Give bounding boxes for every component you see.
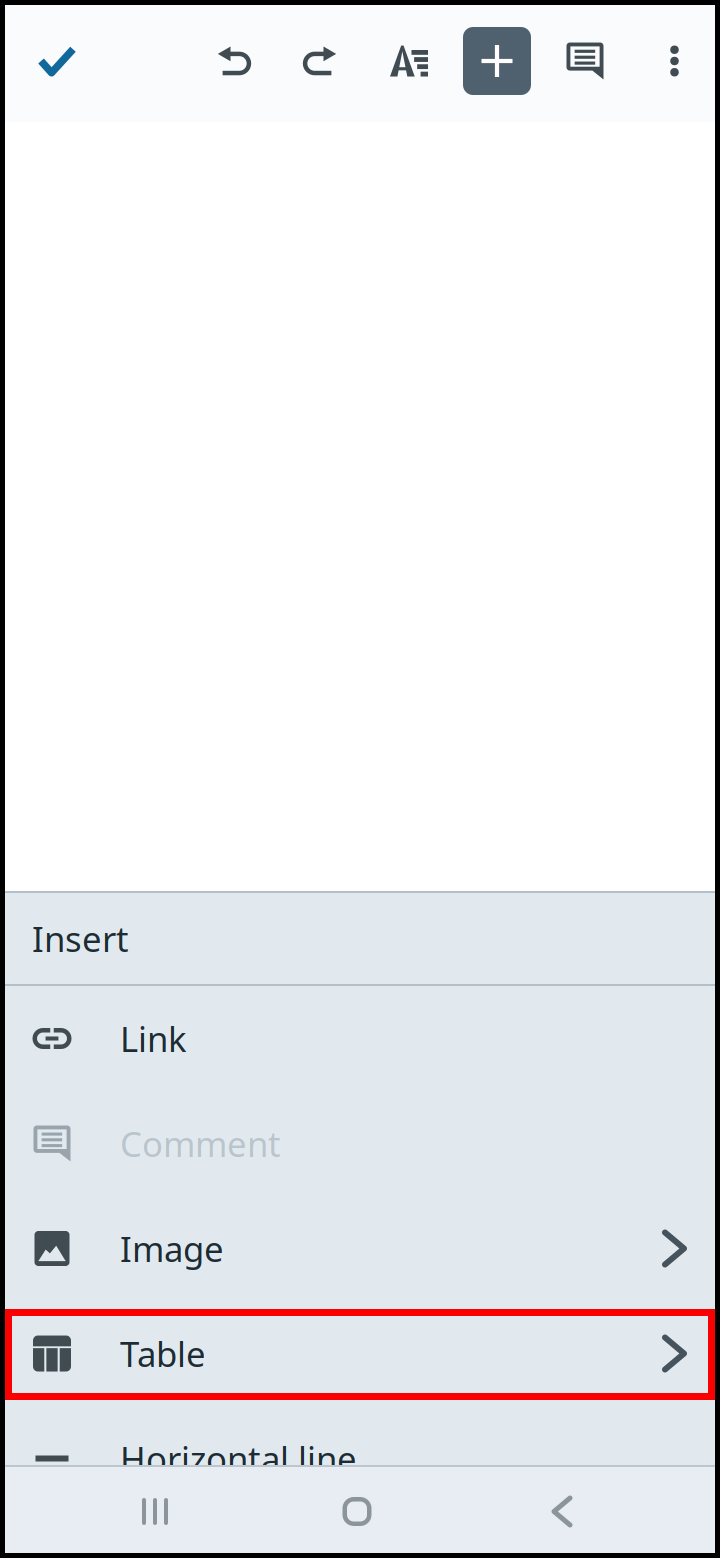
button[interactable]: Done [0, 0, 114, 122]
button[interactable]: Image [0, 1196, 720, 1301]
staticText: Horizontal line [120, 1435, 357, 1481]
button[interactable]: Comments [541, 0, 629, 122]
staticText: Table [120, 1330, 206, 1376]
button[interactable]: Undo [189, 0, 277, 122]
button[interactable]: More options [629, 0, 720, 122]
button[interactable]: Comment [0, 1091, 720, 1196]
button[interactable]: Recent apps [0, 1465, 310, 1558]
button[interactable]: Text formatting [365, 0, 453, 122]
button[interactable]: Table [0, 1301, 720, 1406]
button[interactable]: Back [404, 1465, 720, 1558]
staticText: Image [120, 1225, 224, 1271]
button[interactable]: Horizontal line [0, 1406, 720, 1511]
button[interactable]: Link [0, 986, 720, 1091]
staticText: Link [120, 1015, 187, 1061]
button[interactable]: Insert [453, 0, 541, 122]
button[interactable]: Home [310, 1465, 404, 1558]
staticText: Insert [32, 915, 129, 961]
button[interactable]: Redo [277, 0, 365, 122]
staticText: Comment [120, 1120, 281, 1166]
